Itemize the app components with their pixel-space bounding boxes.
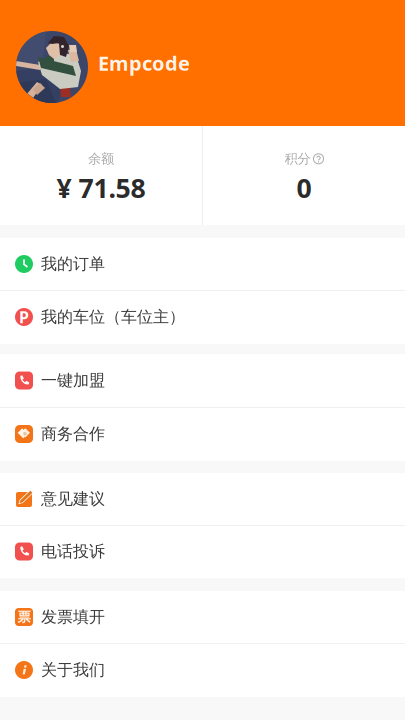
staticText: 电话投诉: [41, 542, 105, 561]
button[interactable]: 意见建议: [0, 473, 405, 526]
staticText: 商务合作: [41, 424, 105, 444]
staticText: 票: [17, 609, 30, 625]
button[interactable]: 电话投诉: [0, 526, 405, 578]
staticText: 0: [296, 170, 311, 205]
staticText: Empcode: [98, 50, 190, 76]
staticText: 余额: [88, 151, 114, 167]
button[interactable]: 商务合作: [0, 408, 405, 461]
button[interactable]: 我的订单: [0, 238, 405, 291]
staticText: 意见建议: [41, 489, 105, 509]
button[interactable]: P: [0, 291, 405, 344]
button[interactable]: 票: [0, 591, 405, 644]
staticText: P: [19, 306, 29, 328]
button[interactable]: 关于我们: [0, 644, 405, 697]
staticText: ¥ 71.58: [56, 170, 145, 205]
staticText: 我的车位（车位主）: [41, 307, 185, 327]
button[interactable]: 一键加盟: [0, 354, 405, 408]
staticText: 关于我们: [41, 660, 105, 680]
staticText: 我的订单: [41, 254, 105, 274]
staticText: 一键加盟: [41, 371, 105, 390]
staticText: 发票填开: [41, 607, 105, 627]
staticText: 积分: [284, 151, 310, 167]
